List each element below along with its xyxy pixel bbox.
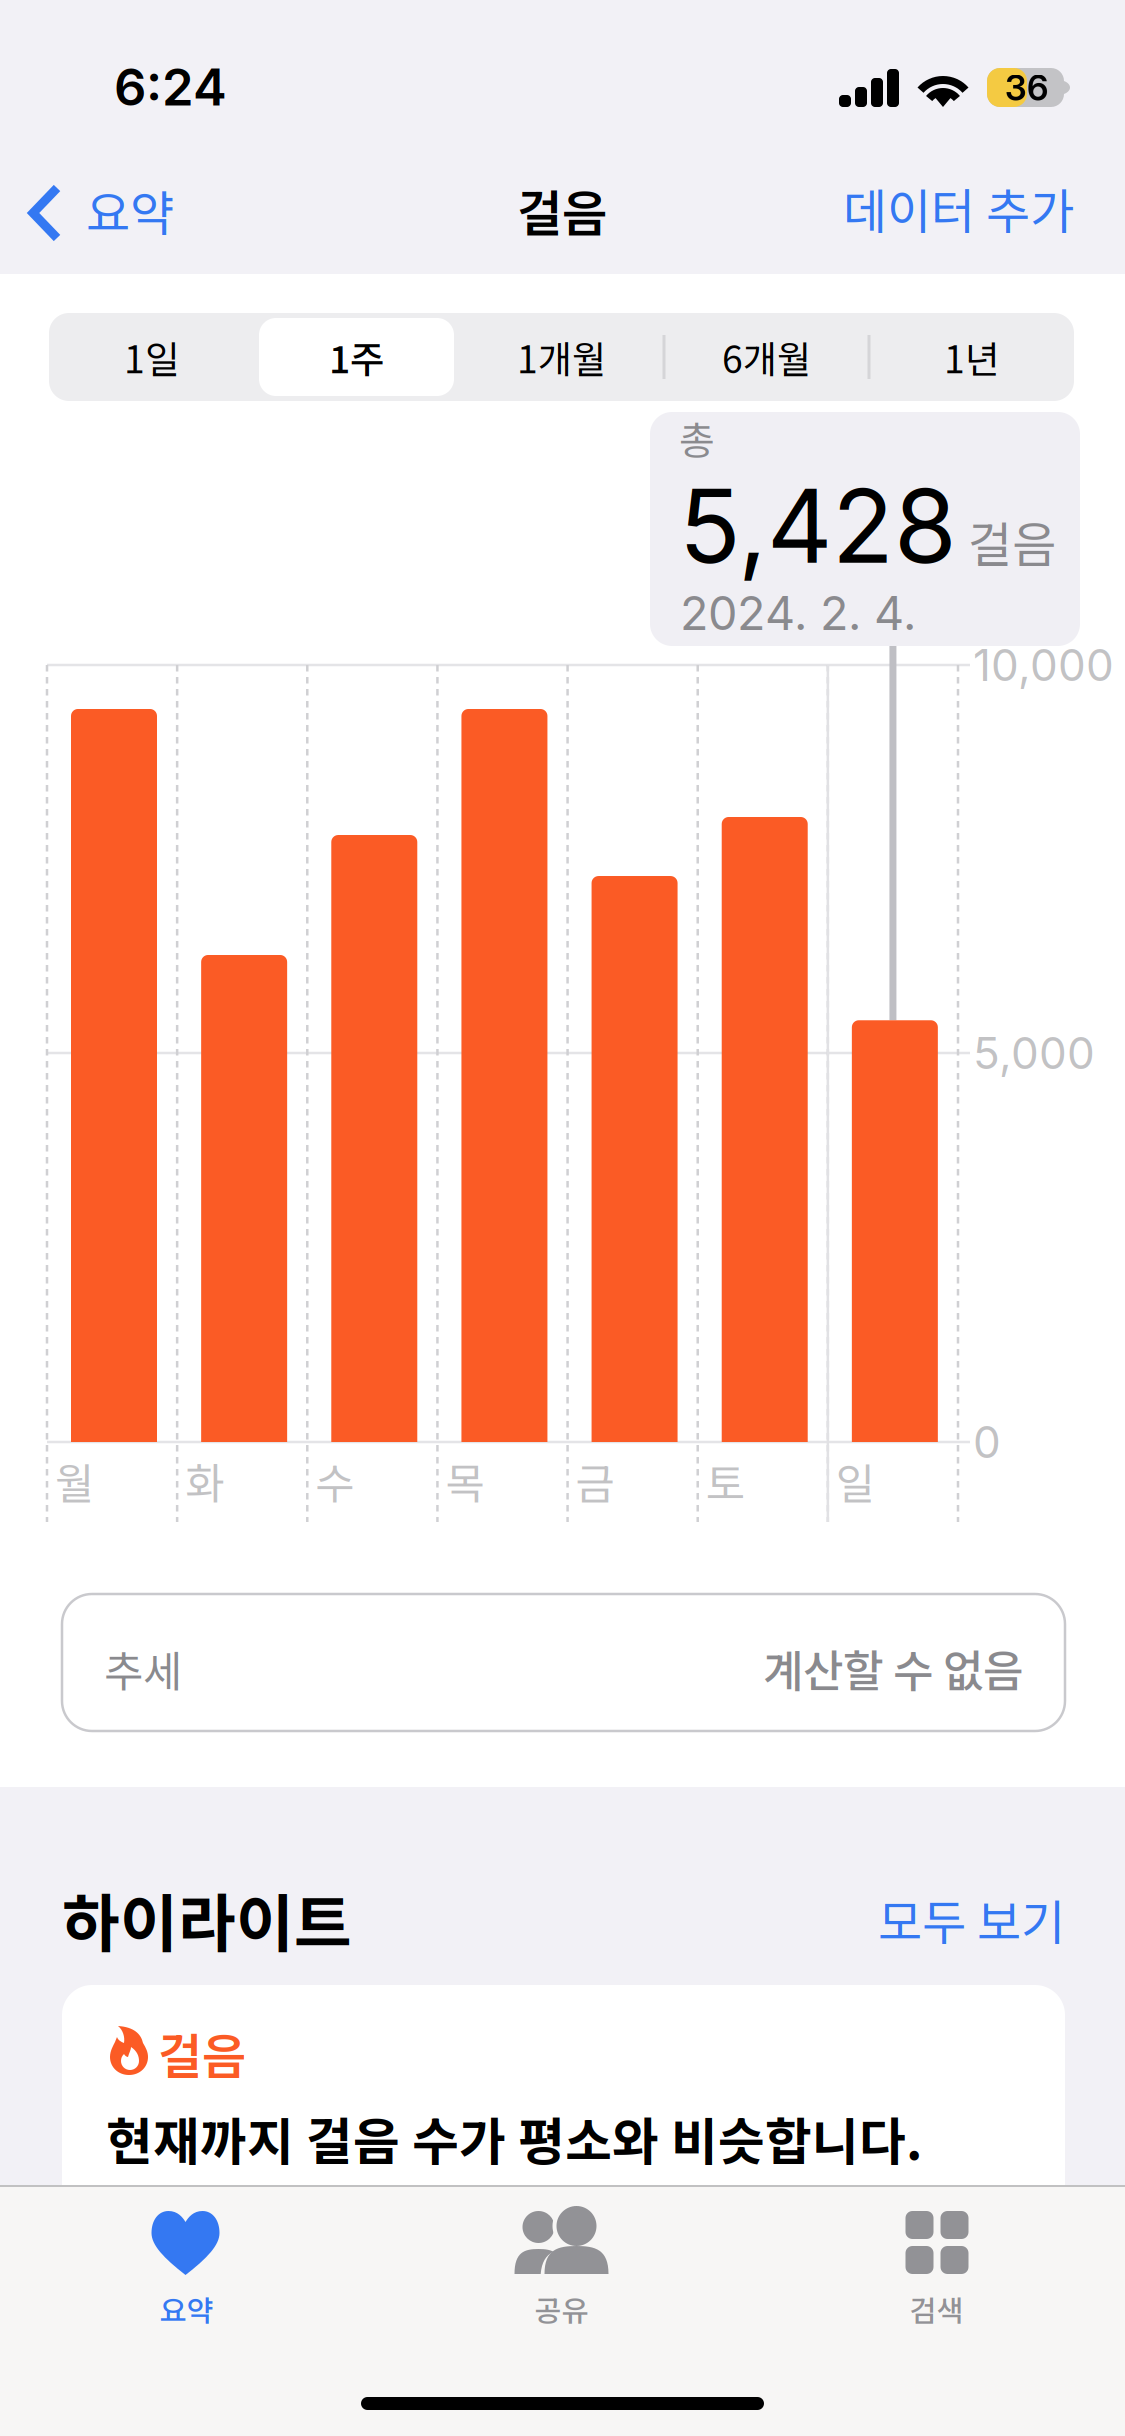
staticText: 1년 xyxy=(944,330,999,384)
staticText: 2024. 2. 4. xyxy=(680,585,916,641)
staticText: 금 xyxy=(576,1450,615,1512)
staticText: 5,428 xyxy=(679,465,957,587)
staticText: 추세 xyxy=(104,1638,182,1700)
button[interactable]: 6개월 xyxy=(664,313,869,401)
staticText: 1주 xyxy=(329,330,384,384)
staticText: 총 xyxy=(679,410,715,466)
staticText: 계산할 수 없음 xyxy=(763,1636,1023,1700)
staticText: 6:24 xyxy=(114,56,227,118)
staticText: 6개월 xyxy=(722,330,811,384)
staticText: 공유 xyxy=(534,2288,588,2330)
button[interactable]: 모두 보기 xyxy=(0,0,1125,2436)
staticText: 토 xyxy=(706,1450,745,1512)
button[interactable]: 추세 xyxy=(62,1594,1065,1731)
staticText: 요약 xyxy=(159,2288,213,2330)
staticText: 걸음 xyxy=(517,174,607,246)
button[interactable]: 검색 xyxy=(749,2185,1124,2345)
staticText: 화 xyxy=(185,1450,224,1512)
staticText: 모두 보기 xyxy=(878,1884,1065,1954)
button[interactable]: 1일 xyxy=(49,313,254,401)
button[interactable]: 1주 xyxy=(254,313,459,401)
staticText: 요약 xyxy=(86,175,174,245)
button[interactable]: 1개월 xyxy=(459,313,664,401)
staticText: 36 xyxy=(1005,67,1048,109)
button[interactable]: 요약 xyxy=(0,2185,374,2345)
staticText: 데이터 추가 xyxy=(843,173,1074,243)
staticText: 월 xyxy=(55,1450,94,1512)
staticText: 현재까지 걸음 수가 평소와 비슷합니다. xyxy=(106,2101,922,2175)
staticText: 1개월 xyxy=(517,330,606,384)
staticText: 검색 xyxy=(909,2288,963,2330)
button[interactable]: 1년 xyxy=(869,313,1074,401)
staticText: 하이라이트 xyxy=(62,1874,352,1964)
staticText: 일 xyxy=(836,1450,875,1512)
button[interactable]: 데이터 추가 xyxy=(839,156,1125,266)
staticText: 목 xyxy=(445,1450,484,1512)
staticText: 수 xyxy=(315,1450,354,1512)
staticText: 0 xyxy=(973,1415,1001,1469)
staticText: 5,000 xyxy=(973,1026,1095,1080)
button[interactable]: 요약 xyxy=(30,156,260,266)
staticText: 10,000 xyxy=(973,638,1114,692)
staticText: 1일 xyxy=(124,330,179,384)
button[interactable]: 공유 xyxy=(374,2185,749,2345)
staticText: 걸음 xyxy=(968,506,1056,576)
staticText: 걸음 xyxy=(158,2018,246,2088)
